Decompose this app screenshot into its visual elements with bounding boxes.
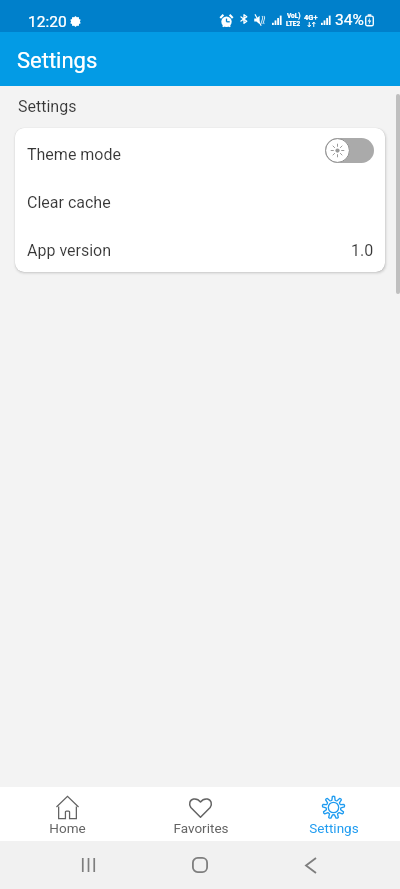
button[interactable]: Settings xyxy=(267,787,400,841)
staticText: Settings xyxy=(17,48,98,74)
button[interactable]: Home xyxy=(0,787,134,841)
staticText: 34% xyxy=(335,11,364,29)
button[interactable]: Recent apps xyxy=(60,841,116,889)
button[interactable]: Clear cache xyxy=(15,176,385,224)
staticText: Settings xyxy=(18,97,77,116)
staticText: Theme mode xyxy=(27,145,121,164)
staticText: 4G+ xyxy=(304,13,318,22)
button[interactable]: App version xyxy=(15,224,385,272)
staticText: VoL) xyxy=(287,12,301,20)
button[interactable]: Home xyxy=(172,841,228,889)
staticText: 12:20 xyxy=(28,13,67,31)
button[interactable]: Toggle theme mode xyxy=(325,138,374,163)
staticText: Home xyxy=(49,820,86,836)
staticText: App version xyxy=(27,241,112,260)
staticText: Favorites xyxy=(173,820,229,836)
staticText: 1.0 xyxy=(351,241,374,260)
button[interactable]: Back xyxy=(283,841,339,889)
staticText: Clear cache xyxy=(27,193,111,212)
staticText: Settings xyxy=(309,820,359,836)
staticText: LTE2 xyxy=(286,20,301,28)
button[interactable]: Theme mode xyxy=(15,128,385,176)
button[interactable]: Favorites xyxy=(134,787,267,841)
